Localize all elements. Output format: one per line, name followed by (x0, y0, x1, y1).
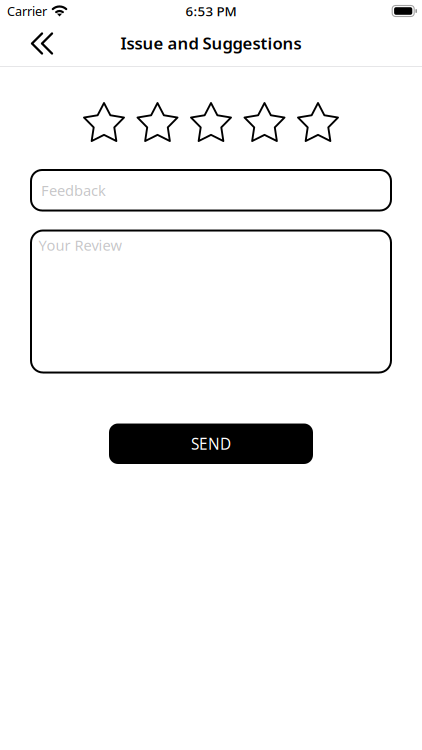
button[interactable]: Back (0, 23, 65, 65)
button[interactable]: Feedback (31, 170, 391, 210)
button[interactable]: Rate (137, 103, 177, 141)
button[interactable]: Rate (84, 103, 124, 141)
staticText: Feedback (41, 180, 106, 200)
staticText: Issue and Suggestions (120, 32, 301, 54)
staticText: 6:53 PM (185, 2, 236, 20)
staticText: Carrier (7, 2, 47, 20)
staticText: Your Review (38, 235, 122, 255)
button[interactable]: Rate (298, 103, 338, 141)
button[interactable]: SEND (109, 423, 313, 464)
button[interactable]: Your Review (31, 230, 391, 372)
button[interactable]: Rate (244, 103, 284, 141)
staticText: SEND (191, 433, 231, 454)
button[interactable]: Rate (191, 103, 231, 141)
